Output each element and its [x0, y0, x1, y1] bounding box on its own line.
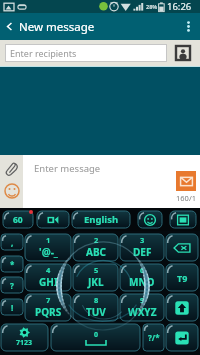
staticText: 1 [46, 235, 51, 245]
button[interactable]: Insert emoticon [2, 181, 21, 200]
staticText: MNO [129, 275, 155, 289]
staticText: 5 [94, 265, 99, 275]
staticText: ? [10, 280, 14, 291]
button[interactable]: Enter [166, 324, 198, 351]
button[interactable]: Attach [2, 159, 21, 178]
staticText: JKL [88, 275, 104, 289]
button[interactable]: 8 [73, 294, 118, 321]
button[interactable]: 2 [73, 234, 118, 261]
staticText: 2 [94, 235, 99, 245]
button[interactable]: Space [51, 324, 140, 351]
button[interactable]: ?/* [143, 324, 164, 351]
button[interactable]: Navigate up [0, 13, 19, 40]
button[interactable]: Enter recipients [5, 44, 167, 62]
button[interactable]: 7 [25, 294, 71, 321]
staticText: 3 [140, 235, 145, 245]
button[interactable]: Emoji [138, 211, 162, 228]
button[interactable]: ? [1, 277, 23, 293]
staticText: WXYZ [128, 305, 157, 319]
staticText: GHI [39, 275, 58, 289]
button[interactable]: 6 [120, 264, 164, 291]
button[interactable]: English [72, 211, 130, 228]
staticText: ! [11, 302, 14, 313]
staticText: DEF [133, 245, 152, 259]
staticText: 9 [140, 295, 145, 305]
staticText: * [10, 259, 15, 270]
staticText: New message [19, 19, 95, 35]
button[interactable]: 7123 [1, 324, 48, 351]
staticText: TUV [86, 305, 106, 319]
staticText: 7 [46, 295, 51, 305]
button[interactable]: Keyboard settings [170, 211, 196, 228]
button[interactable]: 9 [120, 294, 164, 321]
staticText: 0 [94, 330, 99, 340]
staticText: '@-_ [39, 245, 58, 259]
staticText: 6 [140, 265, 145, 275]
button[interactable]: Clipboard [37, 211, 69, 228]
button[interactable]: 1 [25, 234, 71, 261]
staticText: English [84, 213, 119, 226]
staticText: 28% [146, 3, 158, 10]
staticText: Enter recipients [10, 47, 77, 59]
button[interactable]: * [1, 256, 23, 272]
staticText: ?/* [148, 332, 160, 343]
staticText: 4 [46, 265, 51, 275]
staticText: 8 [94, 295, 99, 305]
staticText: 160/1 [175, 193, 197, 203]
staticText: 60 [13, 214, 23, 226]
staticText: , [11, 237, 14, 248]
button[interactable]: 3 [120, 234, 164, 261]
button[interactable]: More options [176, 13, 200, 40]
button[interactable]: 5 [73, 264, 118, 291]
button[interactable]: ! [1, 299, 23, 315]
button[interactable]: Shift [166, 294, 198, 321]
staticText: 7123 [16, 338, 33, 348]
staticText: T9 [177, 272, 188, 284]
button[interactable]: Choose contacts [175, 45, 191, 61]
staticText: 16:26 [167, 0, 192, 13]
staticText: PQRS [35, 305, 62, 319]
button[interactable]: , [1, 234, 23, 250]
button[interactable]: T9 [166, 264, 198, 291]
button[interactable]: Timer 60 [3, 211, 33, 228]
button[interactable]: 4 [25, 264, 71, 291]
staticText: ABC [86, 245, 106, 259]
button[interactable]: Delete [166, 234, 198, 261]
staticText: Enter message [34, 162, 101, 175]
button[interactable]: Send message [176, 171, 196, 191]
